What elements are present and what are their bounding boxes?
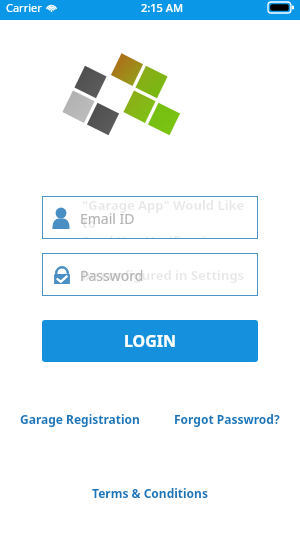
button[interactable]: Forgot Passwrod?: [172, 407, 282, 431]
button[interactable]: Garage Registration: [18, 407, 142, 431]
button[interactable]: "Garage App" Would Like to: [42, 196, 258, 239]
staticText: be configured in Settings: [82, 266, 245, 284]
staticText: Terms & Conditions: [92, 485, 208, 501]
button[interactable]: LOGIN: [42, 320, 258, 362]
button[interactable]: Terms & Conditions: [86, 481, 214, 505]
staticText: Email ID: [80, 209, 135, 228]
button[interactable]: be configured in Settings: [42, 253, 258, 296]
staticText: "Garage App" Would Like to: [82, 196, 258, 232]
staticText: Send You Notifications: [82, 232, 229, 239]
staticText: 2:15 AM: [141, 0, 184, 15]
staticText: LOGIN: [124, 330, 177, 352]
staticText: Garage Registration: [20, 411, 140, 427]
staticText: Forgot Passwrod?: [174, 411, 280, 427]
staticText: Carrier: [6, 0, 42, 15]
staticText: Password: [80, 266, 144, 285]
